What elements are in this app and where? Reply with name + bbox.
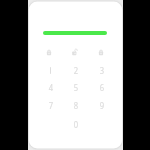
button[interactable]: 1 <box>38 62 63 79</box>
staticText: 3 <box>100 64 104 77</box>
button[interactable]: 4 <box>38 79 63 96</box>
staticText: 7 <box>49 99 53 112</box>
button[interactable]: 0 <box>63 116 88 133</box>
staticText: 0 <box>74 118 78 131</box>
button[interactable]: 9 <box>89 97 114 114</box>
staticText: 8 <box>74 99 78 112</box>
staticText: 6 <box>100 81 104 94</box>
button[interactable]: 2 <box>63 62 88 79</box>
staticText: 9 <box>100 99 104 112</box>
button[interactable]: 7 <box>38 97 63 114</box>
button[interactable]: 6 <box>89 79 114 96</box>
button[interactable]: 8 <box>63 97 88 114</box>
button[interactable]: Locked <box>44 46 54 56</box>
staticText: 4 <box>49 81 53 94</box>
button[interactable]: Unlocked <box>70 46 80 56</box>
staticText: 5 <box>74 81 78 94</box>
button[interactable]: 3 <box>89 62 114 79</box>
button[interactable]: 5 <box>63 79 88 96</box>
staticText: 2 <box>74 64 78 77</box>
other: 1 <box>38 62 63 79</box>
button[interactable]: Lock <box>96 46 106 56</box>
